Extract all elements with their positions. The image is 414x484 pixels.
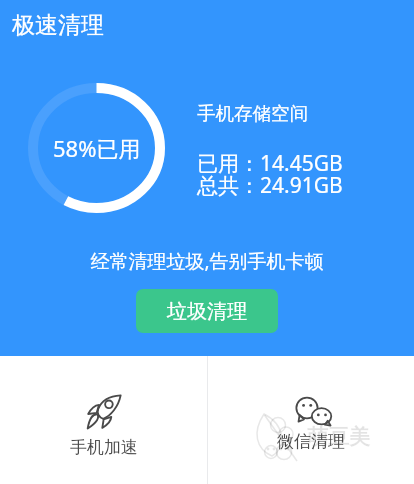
staticText: 垃圾清理	[167, 299, 247, 324]
staticText: 微信清理	[277, 431, 345, 452]
staticText: 58%已用	[53, 133, 141, 163]
staticText: 极速清理	[12, 11, 104, 40]
button[interactable]: WeChat clean	[207, 356, 414, 484]
staticText: 手机存储空间	[197, 102, 308, 125]
staticText: 已用：14.45GB 总共：24.91GB	[197, 149, 343, 199]
staticText: 经常清理垃圾,告别手机卡顿	[90, 248, 324, 274]
staticText: 萌豆美	[307, 424, 370, 450]
other: WeChat clean	[296, 397, 332, 425]
other: Phone boost	[87, 395, 121, 429]
button[interactable]: Phone boost	[0, 356, 207, 484]
button[interactable]: 垃圾清理	[136, 289, 278, 333]
staticText: 手机加速	[70, 437, 138, 458]
